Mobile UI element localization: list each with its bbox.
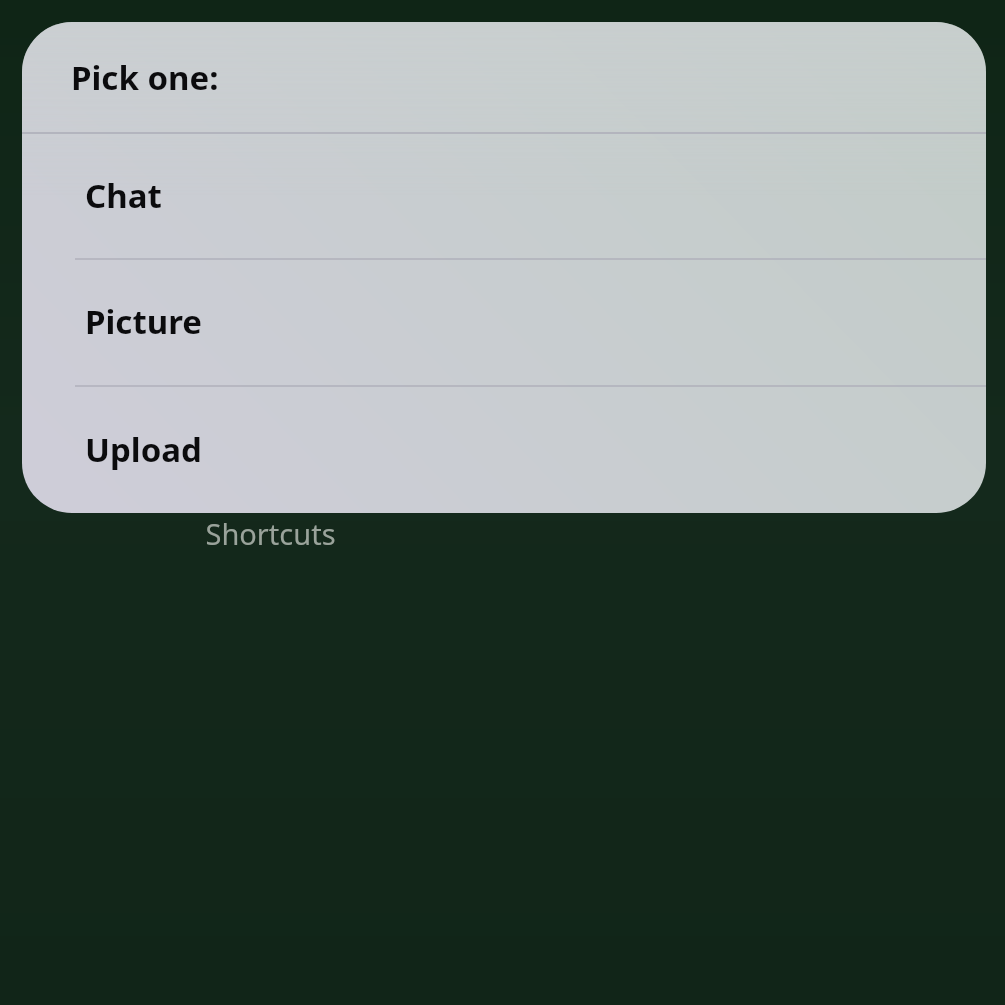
- button[interactable]: Chat: [22, 132, 986, 258]
- staticText: Shortcuts: [205, 514, 336, 553]
- staticText: Pick one:: [71, 55, 219, 100]
- staticText: Picture: [85, 299, 202, 344]
- staticText: Upload: [85, 427, 202, 472]
- button[interactable]: Picture: [22, 258, 986, 385]
- staticText: Chat: [85, 173, 162, 218]
- button[interactable]: Upload: [22, 385, 986, 513]
